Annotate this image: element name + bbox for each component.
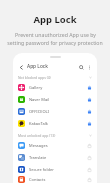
button[interactable]: Contacts: [13, 175, 97, 183]
staticText: Contacts: [29, 177, 46, 182]
button[interactable]: Translate: [13, 151, 97, 163]
staticText: Prevent unauthorized App use by: [15, 31, 96, 38]
staticText: Most unlocked app (13): [18, 133, 56, 138]
button[interactable]: Secure folder: [13, 163, 97, 175]
button[interactable]: Gallery: [13, 81, 97, 93]
staticText: Messages: [29, 143, 48, 148]
button[interactable]: More options: [85, 63, 93, 71]
staticText: Naver Mail: [29, 97, 50, 102]
staticText: App Lock: [27, 63, 48, 70]
button[interactable]: OFFICEOLI: [13, 105, 97, 117]
button[interactable]: Back: [17, 63, 25, 71]
staticText: Translate: [29, 155, 47, 160]
staticText: App Lock: [33, 13, 77, 26]
staticText: Gallery: [29, 85, 43, 90]
button[interactable]: KakaoTalk: [13, 117, 97, 129]
button[interactable]: Naver Mail: [13, 93, 97, 105]
staticText: Secure folder: [29, 167, 54, 172]
staticText: KakaoTalk: [29, 121, 48, 126]
staticText: Not blocked apps (4): [18, 75, 51, 80]
staticText: setting password for privacy protection: [7, 39, 103, 46]
staticText: OFFICEOLI: [29, 109, 49, 114]
button[interactable]: Search: [77, 63, 85, 71]
button[interactable]: Messages: [13, 139, 97, 151]
